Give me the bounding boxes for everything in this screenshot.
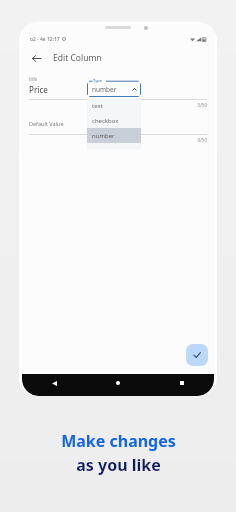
button[interactable]: Recent apps [150, 374, 214, 392]
staticText: Type [93, 78, 102, 83]
button[interactable]: checkbox [87, 113, 141, 128]
button[interactable]: Back [22, 374, 86, 392]
staticText: text [92, 102, 103, 110]
button[interactable]: title [29, 76, 207, 108]
staticText: Edit Column [53, 52, 102, 64]
staticText: 0/50 [29, 137, 207, 143]
button[interactable]: Back [28, 50, 44, 66]
button[interactable]: Home [86, 374, 150, 392]
button[interactable]: Confirm [186, 344, 208, 366]
staticText: number [92, 132, 115, 140]
staticText: Make changes [61, 430, 176, 452]
button[interactable]: Type [87, 78, 141, 97]
staticText: checkbox [92, 117, 119, 125]
staticText: o2 · 4e 12:17 [30, 36, 60, 43]
staticText: Price [29, 84, 48, 95]
staticText: title [29, 76, 38, 82]
button[interactable]: Default Value [29, 120, 207, 143]
staticText: 5/50 [29, 102, 207, 108]
button[interactable]: text [87, 98, 141, 113]
staticText: number [92, 85, 117, 94]
staticText: as you like [76, 454, 161, 476]
button[interactable]: number [87, 128, 141, 143]
staticText: Default Value [29, 120, 64, 127]
